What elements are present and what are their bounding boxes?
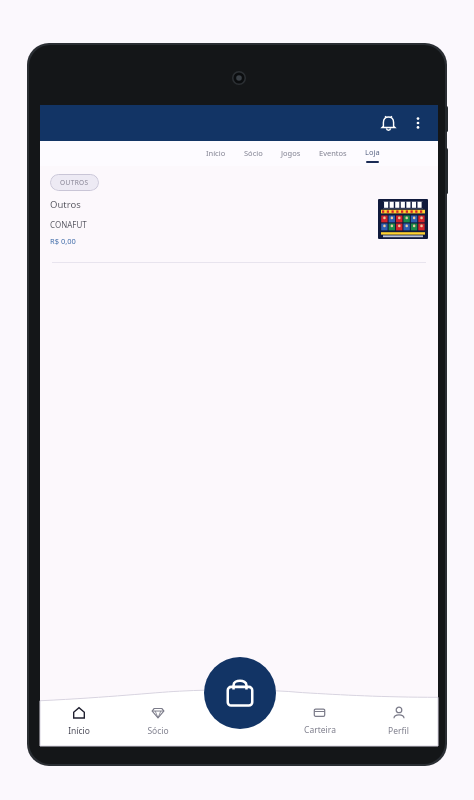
- button[interactable]: Loja: [356, 141, 389, 166]
- button[interactable]: Perfil: [359, 696, 438, 746]
- staticText: CONAFUT: [50, 219, 87, 230]
- staticText: Loja: [365, 147, 380, 157]
- staticText: R$ 0,00: [50, 236, 76, 246]
- staticText: Outros: [50, 198, 81, 211]
- button[interactable]: Carteira: [280, 696, 359, 746]
- button[interactable]: Sócio: [235, 141, 272, 166]
- staticText: Sócio: [244, 148, 263, 158]
- button[interactable]: Início: [40, 696, 118, 746]
- button[interactable]: Álbum CONAFUT: [378, 199, 428, 239]
- button[interactable]: Eventos: [310, 141, 356, 166]
- button[interactable]: Mais opções: [406, 111, 430, 135]
- button[interactable]: Jogos: [272, 141, 310, 166]
- staticText: Eventos: [319, 148, 347, 158]
- button[interactable]: Loja: [204, 657, 276, 729]
- staticText: Carteira: [304, 724, 336, 736]
- staticText: OUTROS: [60, 178, 89, 187]
- staticText: Início: [68, 725, 90, 737]
- button[interactable]: Outros: [40, 198, 438, 246]
- staticText: Jogos: [281, 148, 301, 158]
- staticText: Sócio: [147, 725, 169, 737]
- button[interactable]: Sócio: [118, 696, 197, 746]
- staticText: Perfil: [388, 725, 409, 737]
- button[interactable]: Início: [197, 141, 235, 166]
- button[interactable]: OUTROS: [50, 174, 99, 191]
- staticText: Início: [206, 148, 226, 158]
- button[interactable]: Notificações: [374, 109, 402, 137]
